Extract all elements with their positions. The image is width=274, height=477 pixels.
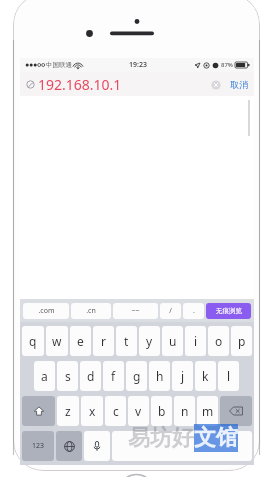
staticText: i	[194, 333, 198, 349]
staticText: z	[65, 403, 71, 419]
button[interactable]: t	[116, 326, 137, 356]
staticText: j	[181, 368, 185, 384]
staticText: w	[52, 333, 62, 349]
button[interactable]: x	[81, 396, 103, 426]
staticText: 123	[32, 441, 45, 451]
staticText: n	[181, 403, 189, 419]
button[interactable]: c	[105, 396, 126, 426]
button[interactable]: b	[151, 396, 172, 426]
button[interactable]: s	[57, 361, 78, 391]
button[interactable]: k	[195, 361, 216, 391]
button[interactable]: Shift	[22, 396, 55, 426]
button[interactable]: e	[70, 326, 91, 356]
staticText: g	[133, 368, 141, 384]
staticText: 87%	[221, 61, 233, 69]
staticText: 取消	[230, 79, 248, 90]
staticText: 文馆	[194, 424, 238, 452]
staticText: 易坊好	[128, 424, 194, 452]
staticText: t	[124, 333, 129, 349]
staticText: .	[193, 306, 195, 316]
button[interactable]: o	[208, 326, 229, 356]
button[interactable]: d	[80, 361, 101, 391]
staticText: d	[87, 368, 95, 384]
button[interactable]: .	[183, 303, 204, 319]
button[interactable]: h	[149, 361, 170, 391]
staticText: ~~	[131, 306, 140, 316]
staticText: 无痕浏览	[216, 307, 242, 315]
staticText: c	[113, 403, 119, 419]
staticText: .cn	[86, 306, 96, 316]
button[interactable]: j	[172, 361, 193, 391]
button[interactable]: q	[22, 326, 44, 356]
staticText: y	[146, 333, 153, 349]
button[interactable]: r	[93, 326, 114, 356]
staticText: .com	[38, 306, 55, 316]
button[interactable]: w	[46, 326, 68, 356]
staticText: 192.168.10.1	[38, 75, 122, 94]
staticText: u	[169, 333, 177, 349]
button[interactable]: g	[126, 361, 147, 391]
staticText: 中国联通	[46, 61, 72, 69]
staticText: b	[158, 403, 166, 419]
staticText: /	[169, 306, 172, 316]
staticText: v	[135, 403, 142, 419]
button[interactable]: u	[162, 326, 183, 356]
button[interactable]: y	[139, 326, 160, 356]
staticText: h	[156, 368, 164, 384]
button[interactable]: /	[160, 303, 181, 319]
staticText: k	[202, 368, 209, 384]
button[interactable]: z	[57, 396, 79, 426]
button[interactable]: a	[34, 361, 55, 391]
button[interactable]: m	[197, 396, 218, 426]
button[interactable]: 123	[22, 431, 54, 461]
staticText: p	[238, 333, 246, 349]
button[interactable]: 无痕浏览	[206, 303, 251, 319]
staticText: x	[89, 403, 96, 419]
button[interactable]: f	[103, 361, 124, 391]
staticText: 19:23	[129, 60, 147, 70]
button[interactable]: ~~	[113, 303, 158, 319]
staticText: m	[202, 403, 214, 419]
button[interactable]: Clear text	[209, 78, 222, 91]
staticText: a	[41, 368, 48, 384]
button[interactable]: Switch keyboard language	[56, 431, 82, 461]
staticText: f	[111, 368, 116, 384]
staticText: q	[29, 333, 37, 349]
button[interactable]: i	[185, 326, 206, 356]
button[interactable]: l	[218, 361, 239, 391]
button[interactable]: .cn	[71, 303, 111, 319]
button[interactable]: n	[174, 396, 195, 426]
staticText: o	[215, 333, 223, 349]
staticText: l	[227, 368, 231, 384]
button[interactable]: Backspace	[220, 396, 252, 426]
button[interactable]: Reload	[25, 79, 36, 90]
staticText: e	[77, 333, 84, 349]
staticText: s	[65, 368, 71, 384]
button[interactable]: Voice input	[84, 431, 110, 461]
button[interactable]: .com	[23, 303, 69, 319]
button[interactable]: p	[231, 326, 252, 356]
button[interactable]: v	[128, 396, 149, 426]
button[interactable]: Space	[112, 431, 252, 461]
button[interactable]: 取消	[228, 77, 250, 92]
staticText: r	[101, 333, 106, 349]
